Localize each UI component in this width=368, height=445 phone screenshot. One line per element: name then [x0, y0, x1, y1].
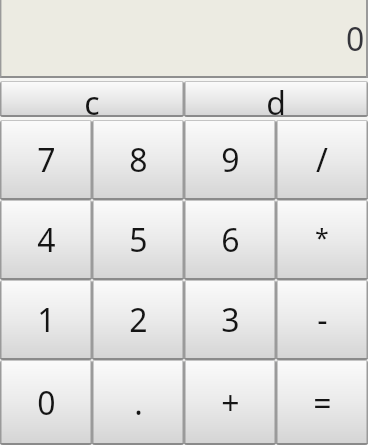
button[interactable]: +	[184, 360, 276, 445]
staticText: 2	[129, 298, 148, 342]
staticText: 6	[221, 218, 240, 262]
staticText: -	[317, 298, 328, 342]
staticText: 0	[346, 17, 365, 61]
staticText: d	[266, 81, 286, 117]
button[interactable]: 1	[0, 280, 92, 360]
button[interactable]: /	[276, 120, 368, 200]
button[interactable]: 4	[0, 200, 92, 280]
staticText: c	[84, 81, 100, 117]
staticText: 8	[129, 138, 148, 182]
staticText: 1	[37, 298, 56, 342]
staticText: 7	[37, 138, 56, 182]
button[interactable]: 8	[92, 120, 184, 200]
button[interactable]: =	[276, 360, 368, 445]
button[interactable]: 7	[0, 120, 92, 200]
staticText: 4	[37, 218, 56, 262]
button[interactable]: c	[0, 81, 184, 117]
button[interactable]: *	[276, 200, 368, 280]
staticText: 5	[129, 218, 148, 262]
staticText: /	[316, 138, 328, 182]
staticText: 0	[37, 381, 56, 425]
button[interactable]: 2	[92, 280, 184, 360]
staticText: .	[134, 381, 143, 425]
staticText: =	[313, 381, 332, 425]
staticText: 3	[221, 298, 240, 342]
button[interactable]: 3	[184, 280, 276, 360]
button[interactable]: .	[92, 360, 184, 445]
staticText: *	[315, 220, 329, 254]
button[interactable]: 5	[92, 200, 184, 280]
staticText: 9	[221, 138, 240, 182]
button[interactable]: 6	[184, 200, 276, 280]
button[interactable]: 9	[184, 120, 276, 200]
button[interactable]: 0	[0, 360, 92, 445]
staticText: +	[221, 381, 240, 425]
button[interactable]: d	[184, 81, 368, 117]
button[interactable]: -	[276, 280, 368, 360]
